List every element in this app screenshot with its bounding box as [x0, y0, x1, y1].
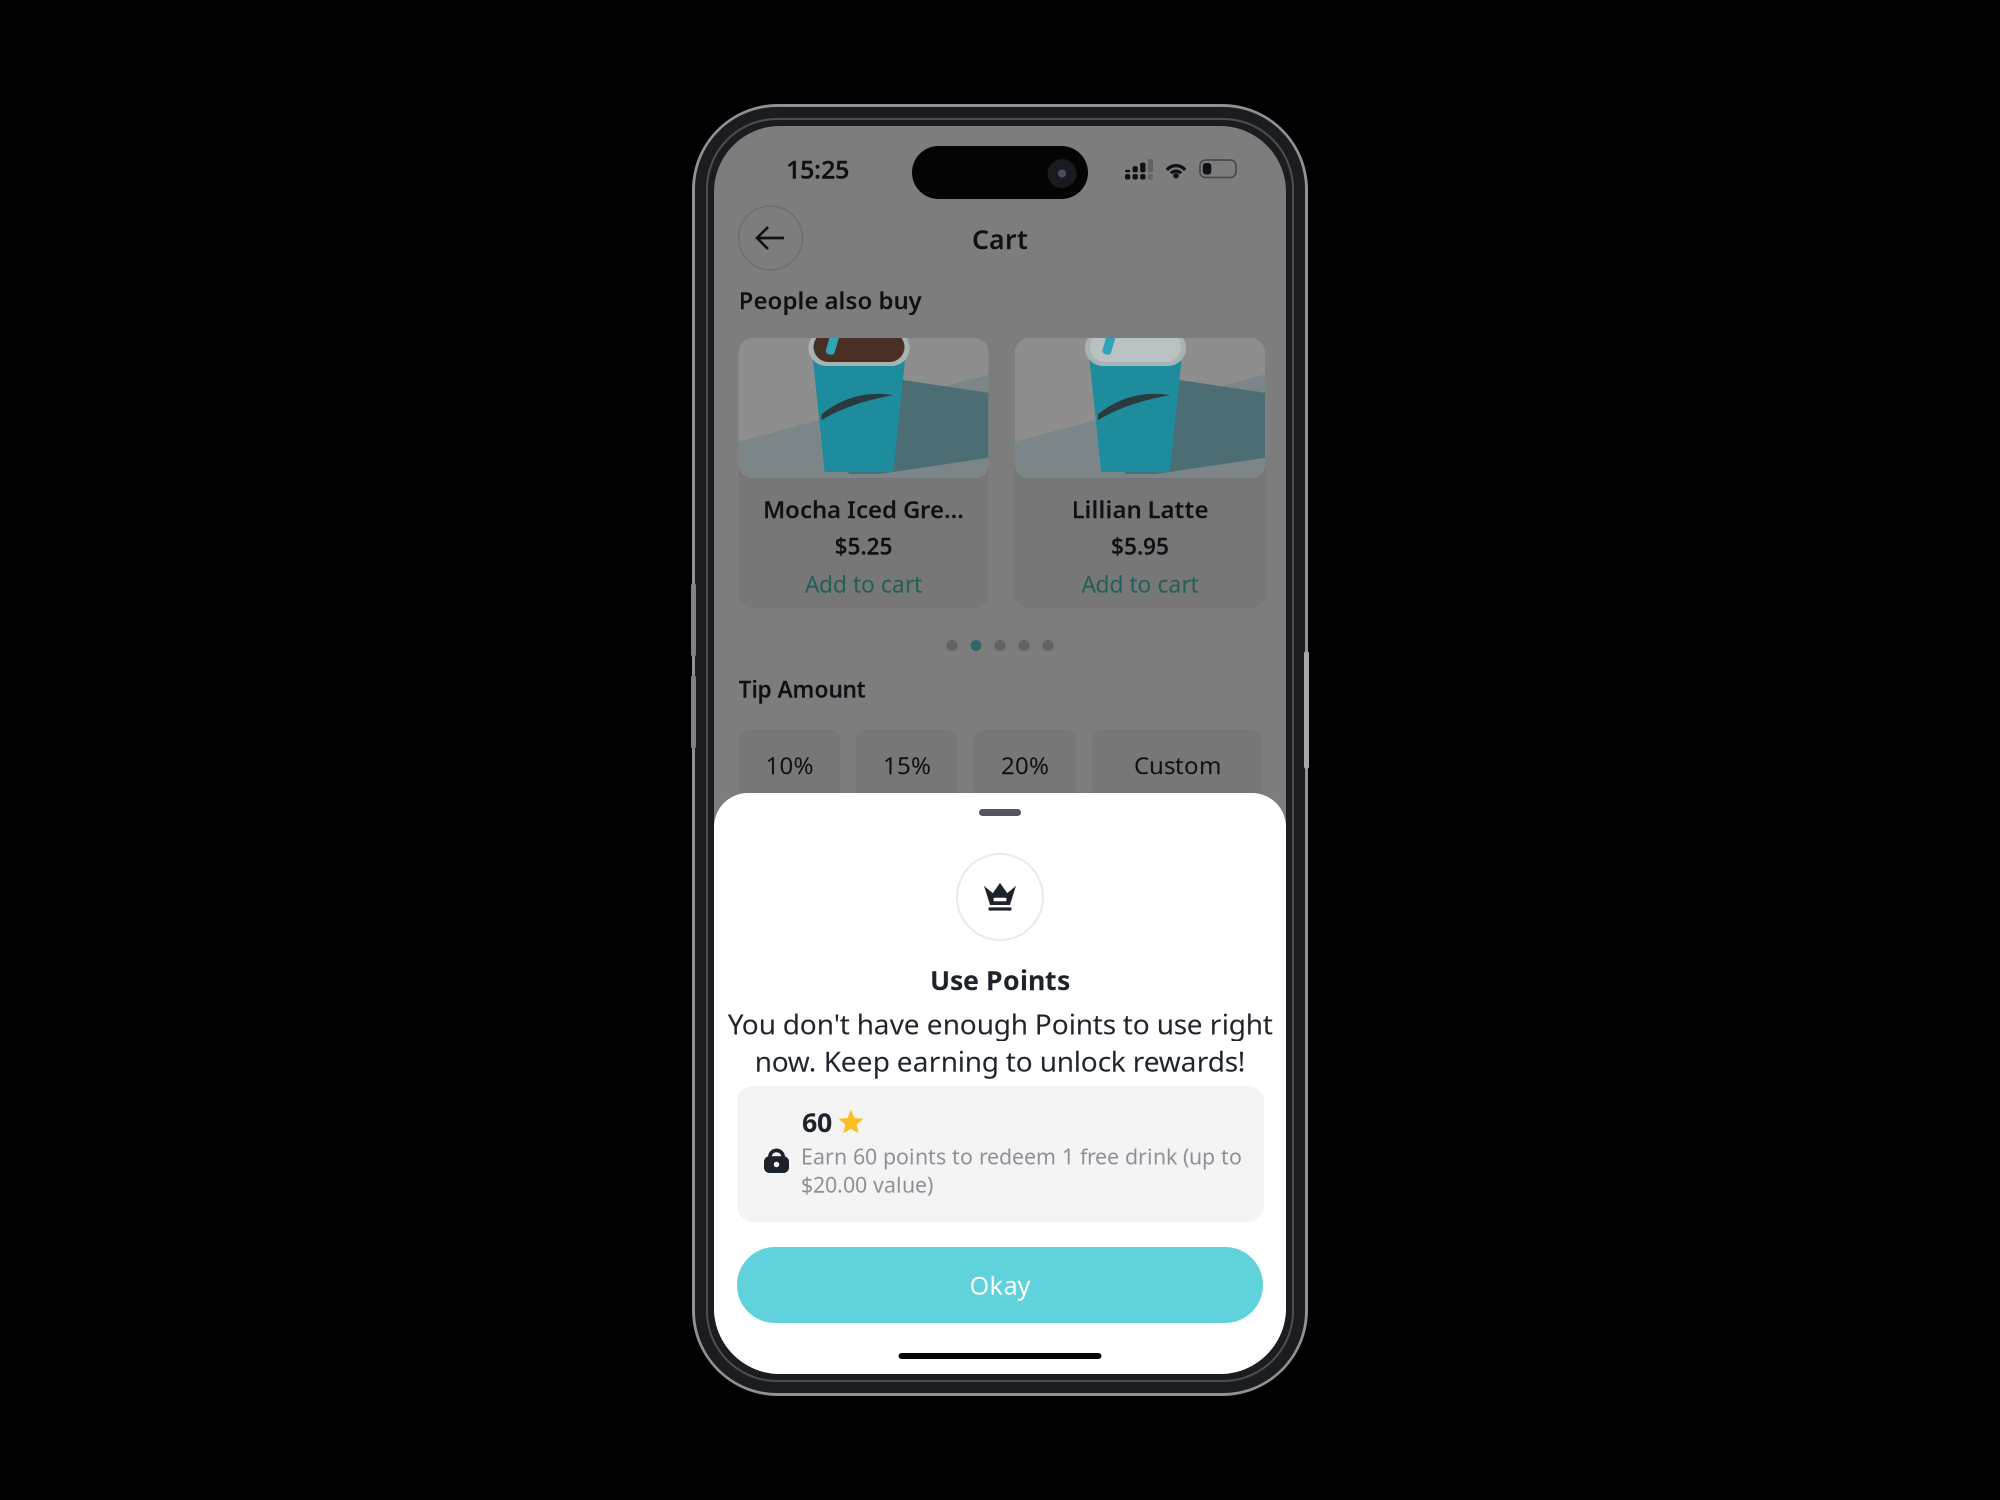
staticText: $5.95 — [1111, 531, 1169, 561]
staticText: Mocha Iced Gre… — [763, 493, 964, 525]
staticText: Lillian Latte — [1071, 493, 1208, 525]
button[interactable]: Okay — [737, 1247, 1263, 1323]
staticText: $5.25 — [834, 531, 892, 561]
staticText: You don't have enough Points to use righ… — [727, 1005, 1272, 1079]
staticText: Use Points — [930, 962, 1070, 998]
staticText: Cart — [972, 221, 1028, 257]
staticText: Custom — [1134, 749, 1221, 781]
staticText: 15% — [883, 749, 931, 781]
button[interactable]: Custom — [1092, 729, 1263, 801]
button[interactable]: 20% — [973, 729, 1076, 801]
staticText: 10% — [765, 749, 813, 781]
staticText: 20% — [1001, 749, 1049, 781]
staticText: Add to cart — [805, 569, 922, 599]
staticText: Earn 60 points to redeem 1 free drink (u… — [801, 1142, 1242, 1199]
staticText: 15:25 — [786, 152, 849, 186]
staticText: Okay — [969, 1268, 1030, 1302]
button[interactable]: Back — [738, 206, 802, 270]
button[interactable]: 10% — [738, 729, 840, 801]
button[interactable]: 15% — [856, 729, 958, 801]
staticText: Tip Amount — [738, 674, 865, 704]
staticText: Add to cart — [1081, 569, 1198, 599]
staticText: People also buy — [738, 284, 921, 316]
staticText: 60 — [802, 1104, 832, 1140]
